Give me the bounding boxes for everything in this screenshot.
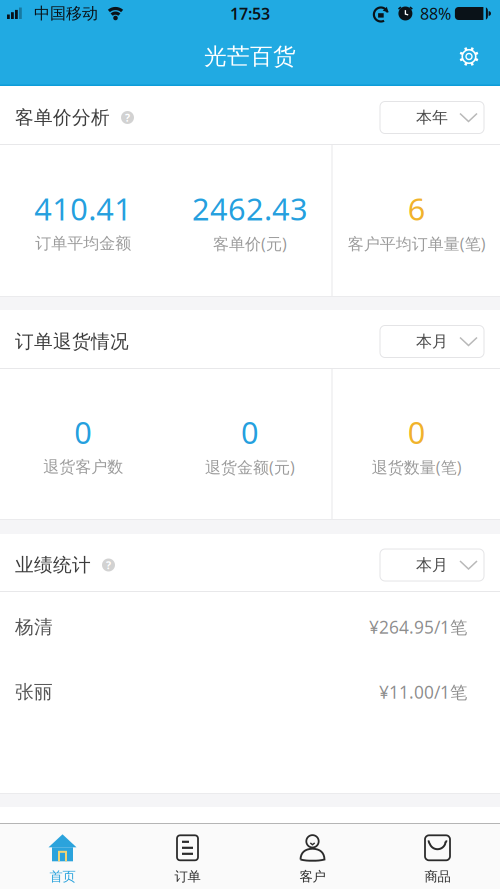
button[interactable]: 杨清 xyxy=(0,592,500,657)
button[interactable]: 设置 xyxy=(459,46,500,66)
staticText: 退货数量(笔) xyxy=(372,456,462,478)
staticText: 首页 xyxy=(49,868,75,885)
staticText: 88% xyxy=(420,3,451,24)
staticText: ? xyxy=(125,110,130,125)
staticText: 17:53 xyxy=(230,3,270,24)
staticText: 本年 xyxy=(416,108,448,127)
button[interactable]: 帮助 xyxy=(102,558,115,571)
staticText: 0 xyxy=(74,412,92,452)
button[interactable]: 首页 xyxy=(0,824,125,889)
button[interactable]: 订单 xyxy=(125,824,250,889)
button[interactable]: 帮助 xyxy=(121,111,134,124)
staticText: 2462.43 xyxy=(192,188,308,229)
staticText: 0 xyxy=(408,412,426,452)
staticText: 订单 xyxy=(174,868,200,885)
button[interactable]: 本月 xyxy=(380,325,484,357)
staticText: 0 xyxy=(241,412,259,452)
staticText: 张丽 xyxy=(15,680,53,703)
staticText: 客单价(元) xyxy=(213,233,287,254)
button[interactable]: 客户 xyxy=(250,824,375,889)
staticText: 客单价分析 xyxy=(15,106,110,129)
button[interactable]: 本年 xyxy=(380,101,484,133)
staticText: 商品 xyxy=(424,868,450,885)
staticText: 客户平均订单量(笔) xyxy=(348,233,486,254)
staticText: 订单平均金额 xyxy=(35,234,131,253)
button[interactable]: 张丽 xyxy=(0,657,500,722)
staticText: 中国移动 xyxy=(34,4,98,23)
staticText: 杨清 xyxy=(15,615,53,638)
staticText: 退货金额(元) xyxy=(205,456,295,478)
staticText: 业绩统计 xyxy=(15,553,91,576)
staticText: ¥264.95/1笔 xyxy=(369,615,467,638)
staticText: ? xyxy=(106,558,111,572)
staticText: ¥11.00/1笔 xyxy=(379,680,467,703)
staticText: 本月 xyxy=(416,332,448,351)
staticText: 光芒百货 xyxy=(204,43,296,70)
staticText: 订单退货情况 xyxy=(15,330,129,353)
staticText: 410.41 xyxy=(34,188,132,229)
button[interactable]: 商品 xyxy=(375,824,500,889)
button[interactable]: 本月 xyxy=(380,549,484,581)
staticText: 退货客户数 xyxy=(43,457,123,477)
staticText: 客户 xyxy=(299,868,325,885)
staticText: 6 xyxy=(408,188,426,229)
staticText: 本月 xyxy=(416,555,448,575)
